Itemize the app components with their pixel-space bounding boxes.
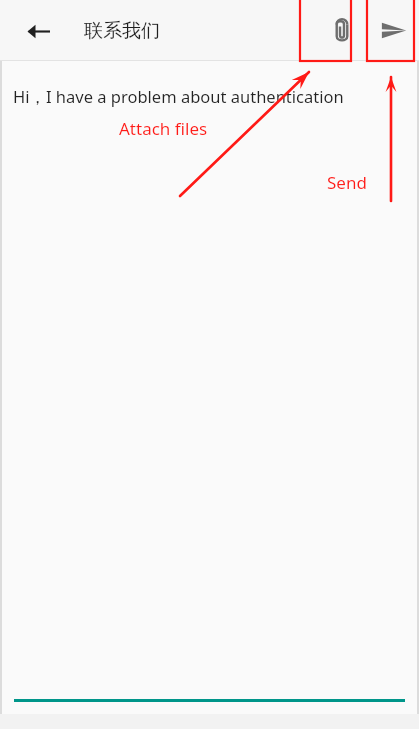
- staticText: Send: [327, 171, 367, 194]
- button[interactable]: Back: [15, 8, 61, 54]
- button[interactable]: Attach files: [316, 0, 367, 61]
- staticText: Hi，I have a problem about authentication: [13, 85, 344, 108]
- button[interactable]: Send: [367, 0, 419, 61]
- staticText: Attach files: [119, 117, 208, 140]
- staticText: 联系我们: [84, 19, 160, 43]
